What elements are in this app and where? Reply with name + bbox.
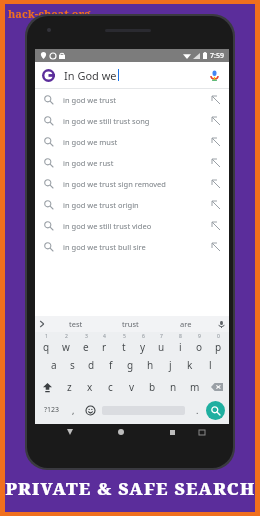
button[interactable]: 1 — [36, 332, 56, 354]
staticText: i — [179, 340, 182, 354]
staticText: m — [190, 380, 200, 394]
staticText: 3 — [85, 333, 88, 340]
button[interactable]: Home — [113, 424, 129, 440]
button[interactable]: Search engine logo — [35, 62, 229, 88]
button[interactable]: 9 — [190, 332, 209, 354]
staticText: e — [83, 340, 89, 354]
button[interactable]: Change keyboard — [194, 424, 210, 440]
staticText: u — [158, 340, 165, 354]
button[interactable]: z — [59, 376, 79, 398]
button[interactable]: 0 — [209, 332, 228, 354]
button[interactable]: ?123 — [39, 398, 65, 422]
staticText: a — [51, 358, 57, 372]
staticText: 6 — [142, 333, 145, 340]
button[interactable]: Back — [62, 424, 78, 440]
staticText: in god we must — [63, 137, 118, 147]
staticText: test — [69, 319, 83, 329]
staticText: PRIVATE & SAFE SEARCH — [5, 477, 256, 500]
button[interactable]: g — [120, 354, 140, 376]
staticText: k — [187, 358, 193, 372]
button[interactable]: in god we still trust video — [35, 215, 229, 236]
button[interactable]: Shift — [35, 376, 59, 398]
staticText: d — [88, 358, 95, 372]
staticText: g — [127, 358, 134, 372]
button[interactable]: m — [184, 376, 205, 398]
staticText: s — [70, 358, 75, 372]
button[interactable]: 5 — [114, 332, 133, 354]
button[interactable]: j — [160, 354, 180, 376]
button[interactable]: Recent apps — [164, 424, 180, 440]
button[interactable]: 3 — [76, 332, 95, 354]
button[interactable]: s — [63, 354, 82, 376]
staticText: q — [43, 340, 50, 354]
staticText: In God we — [64, 68, 117, 83]
button[interactable]: are — [158, 316, 213, 332]
button[interactable]: n — [163, 376, 184, 398]
staticText: f — [109, 358, 113, 372]
button[interactable]: in god we still trust song — [35, 110, 229, 131]
staticText: p — [215, 340, 222, 354]
staticText: in god we rust — [63, 158, 114, 168]
button[interactable]: test — [49, 316, 103, 332]
other: Search engine logo — [42, 69, 55, 82]
staticText: y — [140, 340, 146, 354]
staticText: , — [72, 404, 75, 416]
staticText: are — [180, 319, 192, 329]
staticText: . — [196, 404, 199, 416]
button[interactable]: , — [65, 398, 81, 422]
button[interactable]: Emoji — [81, 398, 99, 422]
button[interactable]: in god we trust origin — [35, 194, 229, 215]
button[interactable]: h — [140, 354, 160, 376]
staticText: 7:59 — [210, 51, 224, 61]
button[interactable]: b — [142, 376, 163, 398]
button[interactable]: 2 — [56, 332, 76, 354]
button[interactable]: . — [188, 398, 206, 422]
button[interactable]: 4 — [95, 332, 114, 354]
button[interactable]: k — [180, 354, 200, 376]
staticText: 8 — [179, 333, 182, 340]
button[interactable]: x — [79, 376, 100, 398]
staticText: 4 — [103, 333, 106, 340]
staticText: b — [149, 380, 156, 394]
button[interactable]: Backspace — [205, 376, 229, 398]
staticText: 5 — [123, 333, 126, 340]
staticText: hack-cheat.org — [8, 6, 91, 21]
staticText: z — [67, 380, 72, 394]
staticText: 7 — [160, 333, 163, 340]
staticText: n — [170, 380, 177, 394]
button[interactable]: f — [101, 354, 120, 376]
staticText: 2 — [65, 333, 68, 340]
staticText: 1 — [45, 333, 48, 340]
button[interactable]: trust — [103, 316, 158, 332]
button[interactable]: in god we must — [35, 131, 229, 152]
button[interactable]: Voice input — [213, 316, 229, 332]
button[interactable]: 7 — [152, 332, 171, 354]
staticText: o — [196, 340, 203, 354]
staticText: in god we trust sign removed — [63, 179, 166, 189]
staticText: ?123 — [44, 405, 60, 415]
button[interactable]: v — [121, 376, 142, 398]
button[interactable]: l — [200, 354, 220, 376]
button[interactable]: in god we trust bull sire — [35, 236, 229, 257]
button[interactable]: in god we trust sign removed — [35, 173, 229, 194]
button[interactable]: in god we rust — [35, 152, 229, 173]
button[interactable]: 8 — [171, 332, 190, 354]
button[interactable]: Search — [206, 401, 225, 420]
button[interactable]: 6 — [133, 332, 152, 354]
button[interactable]: in god we trust — [35, 89, 229, 110]
staticText: in god we trust bull sire — [63, 242, 146, 252]
staticText: x — [87, 380, 93, 394]
button[interactable]: c — [100, 376, 121, 398]
button[interactable]: Voice search — [206, 67, 222, 83]
staticText: t — [122, 340, 126, 354]
staticText: in god we trust origin — [63, 200, 139, 210]
staticText: v — [129, 380, 135, 394]
staticText: trust — [122, 319, 139, 329]
staticText: r — [102, 340, 107, 354]
button[interactable]: d — [82, 354, 101, 376]
button[interactable]: a — [44, 354, 63, 376]
button[interactable]: More suggestions — [35, 316, 49, 332]
staticText: 9 — [198, 333, 201, 340]
staticText: c — [108, 380, 113, 394]
